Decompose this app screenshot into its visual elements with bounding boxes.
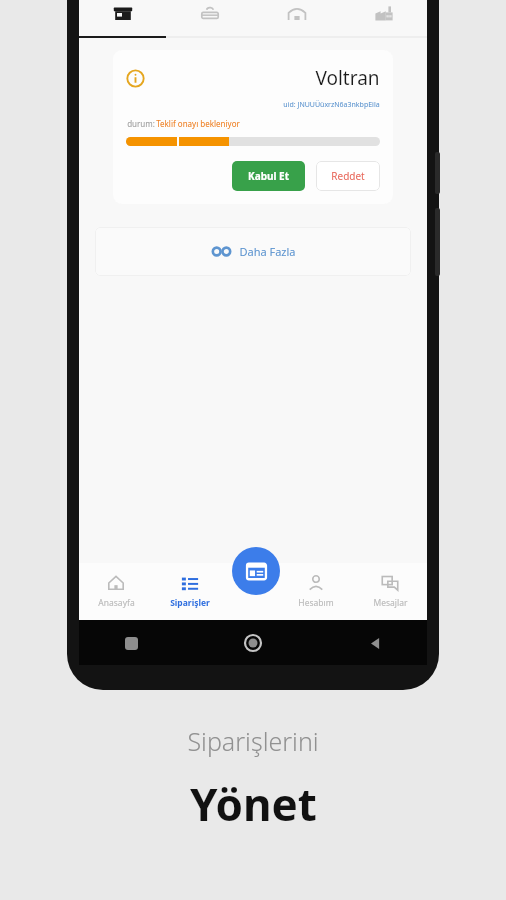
button[interactable]: Ekipman [166,0,253,28]
button[interactable]: Ana ekran [241,631,265,655]
staticText: Kabul Et [248,169,289,183]
button[interactable]: Siparişler [153,563,227,620]
button[interactable]: Fabrika [340,0,427,28]
staticText: durum: [126,118,156,129]
staticText: Mesajlar [373,597,408,609]
button[interactable]: Daha Fazla [95,227,411,276]
button[interactable]: Hesabım [279,563,353,620]
button[interactable]: Geri [363,631,387,655]
staticText: Teklif onayı bekleniyor [156,118,240,129]
button[interactable]: Bilgi [126,69,145,88]
staticText: uid: JNUUÜüxrzN6a3nkbpEila [283,100,380,110]
staticText: Voltran [315,65,380,91]
button[interactable]: Kabul Et [232,161,305,191]
staticText: Anasayfa [98,597,135,609]
button[interactable]: Son uygulamalar [119,631,143,655]
button[interactable]: Mesajlar [353,563,427,620]
button[interactable]: Anasayfa [79,563,153,620]
staticText: Siparişlerini [187,724,319,758]
button[interactable]: Bilgi [113,50,393,204]
button[interactable]: Yeni sipariş oluştur [232,547,280,595]
button[interactable]: Reddet [316,161,380,191]
staticText: Daha Fazla [239,244,296,259]
button[interactable]: Depo [253,0,340,28]
staticText: Hesabım [298,597,334,609]
staticText: Siparişler [170,597,210,609]
staticText: Yönet [190,774,317,834]
button[interactable]: Mağaza [79,0,166,28]
staticText: Reddet [331,169,365,183]
